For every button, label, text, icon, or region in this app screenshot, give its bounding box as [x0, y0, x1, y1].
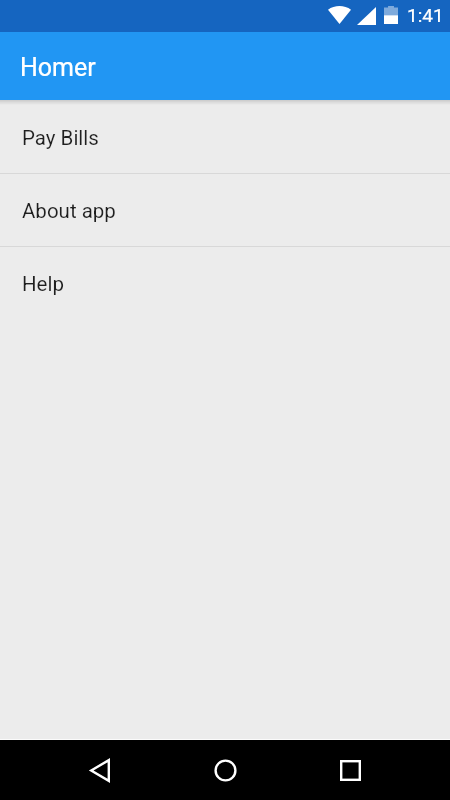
staticText: Homer	[20, 53, 96, 82]
staticText: Help	[22, 272, 64, 296]
button[interactable]: Home	[203, 748, 247, 792]
button[interactable]: Pay Bills	[0, 100, 450, 173]
staticText: About app	[22, 199, 116, 223]
button[interactable]: Recent apps	[328, 748, 372, 792]
button[interactable]: Help	[0, 247, 450, 319]
button[interactable]: Back	[78, 748, 122, 792]
button[interactable]: About app	[0, 174, 450, 246]
staticText: Pay Bills	[22, 126, 99, 150]
staticText: 1:41	[407, 4, 444, 26]
